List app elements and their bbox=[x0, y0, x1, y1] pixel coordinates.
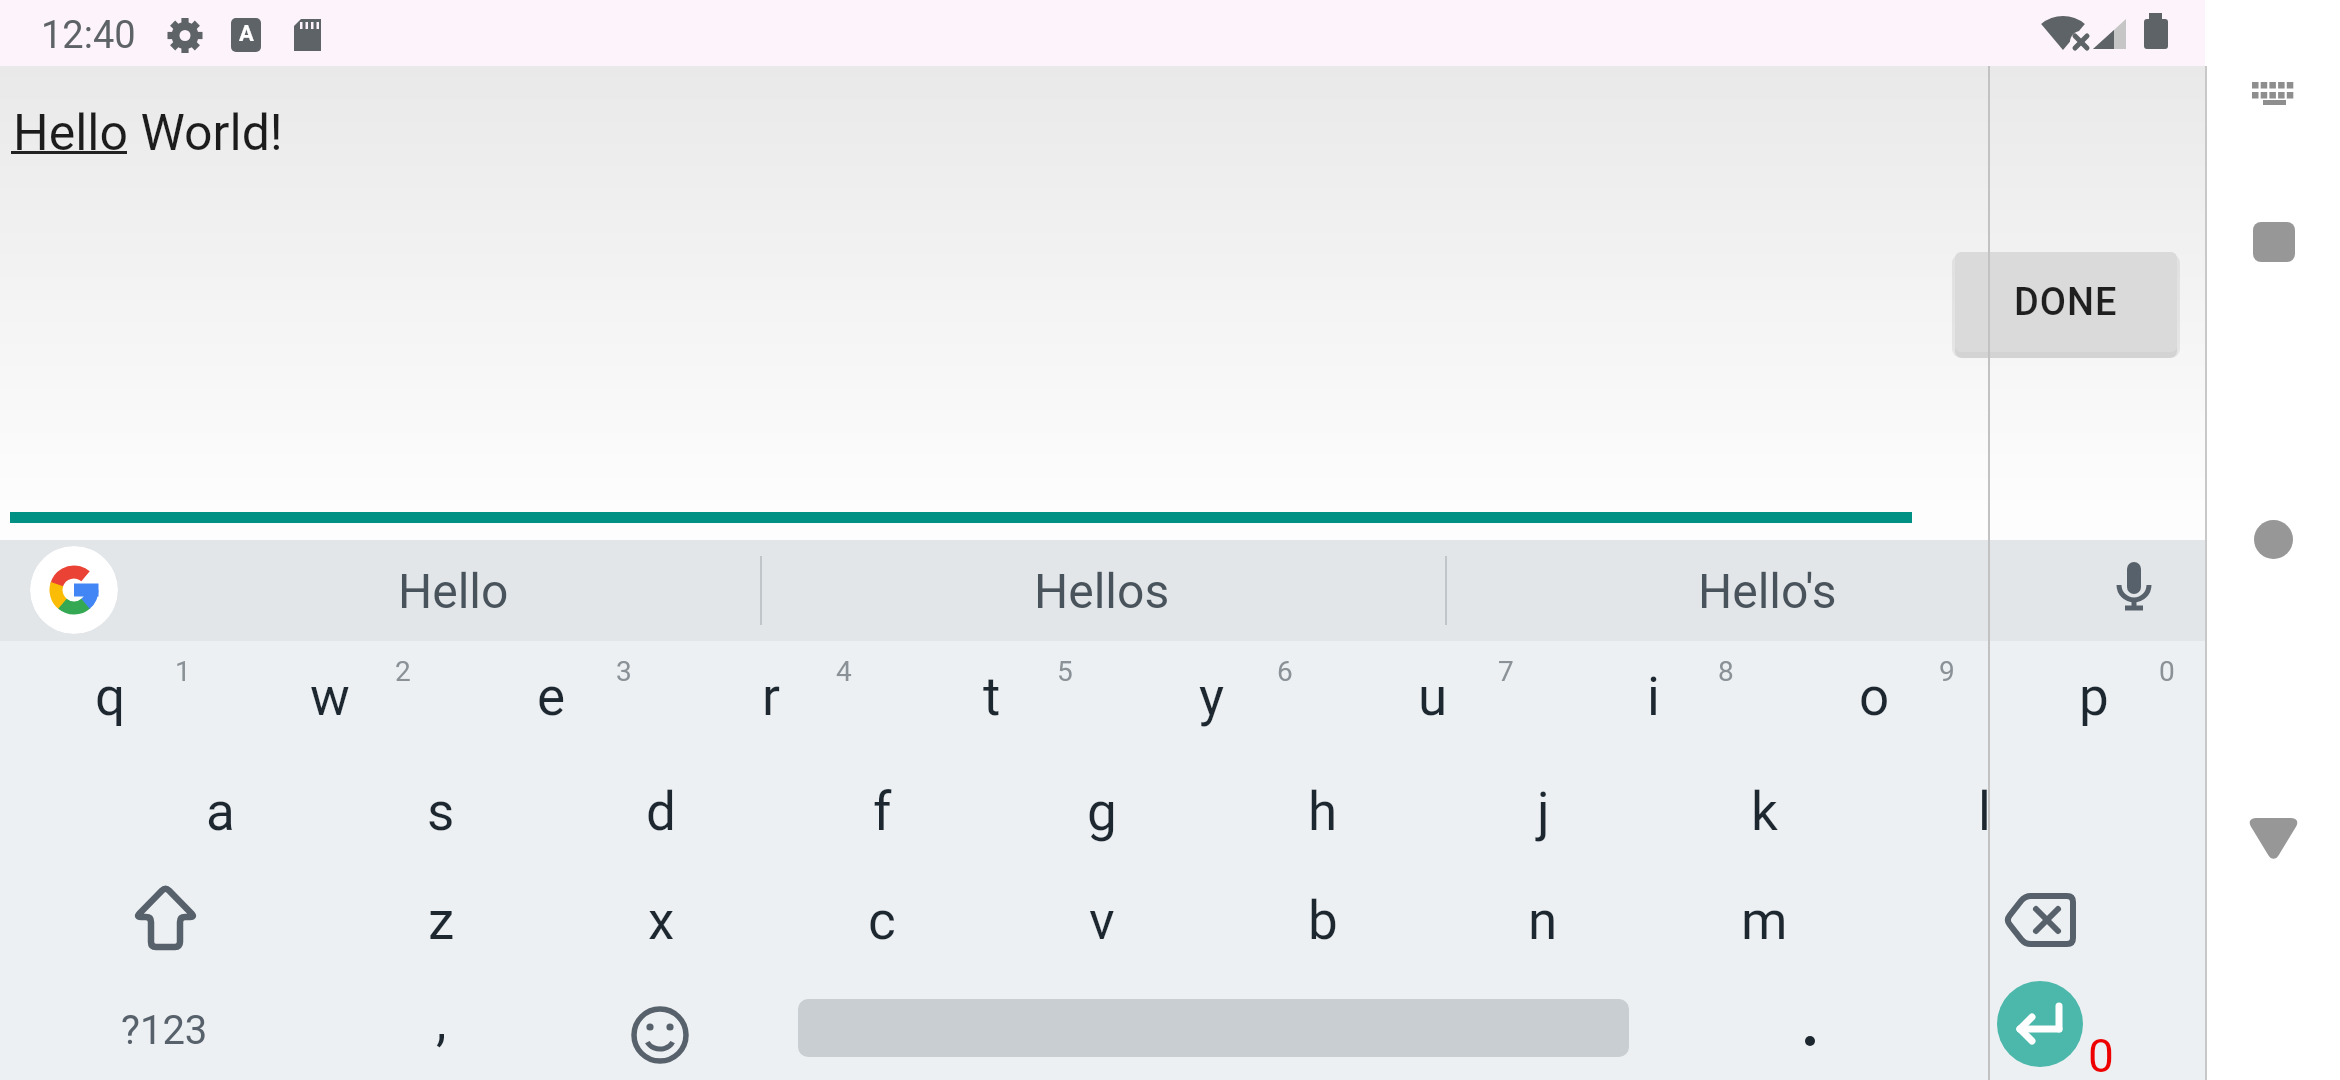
staticText: m bbox=[1741, 890, 1788, 952]
staticText: l bbox=[1978, 781, 1991, 843]
staticText: t bbox=[983, 666, 1001, 728]
button[interactable]: z bbox=[331, 866, 551, 976]
staticText: 0 bbox=[2088, 1029, 2114, 1080]
button[interactable]: s bbox=[331, 757, 551, 867]
button[interactable] bbox=[2099, 550, 2169, 630]
button[interactable]: y bbox=[1102, 642, 1322, 752]
staticText: q bbox=[95, 666, 126, 728]
button[interactable] bbox=[2254, 520, 2293, 559]
button[interactable]: g bbox=[992, 757, 1212, 867]
staticText: ?123 bbox=[121, 1007, 208, 1054]
button[interactable]: v bbox=[992, 866, 1212, 976]
button[interactable]: DONE bbox=[1955, 252, 2177, 352]
staticText: A bbox=[239, 21, 254, 47]
staticText: Hello bbox=[398, 563, 509, 619]
staticText: Hello's bbox=[1698, 563, 1837, 619]
button[interactable]: c bbox=[772, 866, 992, 976]
button[interactable] bbox=[55, 866, 275, 976]
button[interactable]: b bbox=[1213, 866, 1433, 976]
button[interactable] bbox=[30, 546, 118, 634]
staticText: e bbox=[537, 666, 566, 728]
staticText: Hellos bbox=[1034, 563, 1170, 619]
button[interactable]: o bbox=[1764, 642, 1984, 752]
button[interactable] bbox=[1930, 866, 2150, 976]
button[interactable]: r bbox=[661, 642, 881, 752]
button[interactable]: h bbox=[1213, 757, 1433, 867]
button[interactable] bbox=[550, 977, 770, 1080]
staticText: i bbox=[1647, 666, 1660, 728]
button[interactable] bbox=[1700, 980, 1832, 1080]
staticText: 12:40 bbox=[41, 13, 136, 58]
staticText: 1 bbox=[175, 655, 191, 688]
button[interactable]: w bbox=[220, 642, 440, 752]
button[interactable]: e bbox=[441, 642, 661, 752]
button[interactable]: j bbox=[1433, 757, 1653, 867]
staticText: 5 bbox=[1057, 655, 1073, 688]
staticText: 3 bbox=[616, 655, 632, 688]
button[interactable]: f bbox=[772, 757, 992, 867]
staticText: j bbox=[1537, 781, 1550, 843]
staticText: p bbox=[2079, 666, 2109, 728]
staticText: u bbox=[1418, 666, 1448, 728]
button[interactable] bbox=[2253, 222, 2295, 262]
staticText: n bbox=[1528, 890, 1558, 952]
button[interactable]: m bbox=[1654, 866, 1874, 976]
button[interactable]: a bbox=[110, 757, 330, 867]
button[interactable]: k bbox=[1654, 757, 1874, 867]
staticText: w bbox=[310, 666, 350, 728]
staticText: k bbox=[1751, 781, 1778, 843]
button[interactable] bbox=[2245, 814, 2303, 866]
staticText: 7 bbox=[1498, 655, 1514, 688]
button[interactable]: q bbox=[0, 642, 220, 752]
staticText: h bbox=[1308, 781, 1338, 843]
staticText: r bbox=[762, 666, 780, 728]
staticText: DONE bbox=[2014, 280, 2118, 325]
button[interactable]: , bbox=[361, 970, 521, 1074]
button[interactable]: Hello bbox=[138, 540, 768, 641]
staticText: 4 bbox=[836, 655, 852, 688]
staticText: Hello World! bbox=[13, 104, 283, 163]
staticText: c bbox=[868, 890, 896, 952]
staticText: y bbox=[1199, 666, 1225, 728]
staticText: 2 bbox=[395, 655, 411, 688]
button[interactable]: u bbox=[1323, 642, 1543, 752]
button[interactable]: Hello's bbox=[1457, 540, 2077, 641]
staticText: s bbox=[427, 781, 455, 843]
staticText: g bbox=[1087, 781, 1117, 843]
staticText: a bbox=[206, 781, 235, 843]
staticText: d bbox=[646, 781, 676, 843]
button[interactable]: ?123 bbox=[54, 978, 274, 1080]
button[interactable]: l bbox=[1874, 757, 2094, 867]
button[interactable]: p bbox=[1984, 642, 2204, 752]
button[interactable]: x bbox=[551, 866, 771, 976]
staticText: b bbox=[1308, 890, 1338, 952]
staticText: x bbox=[648, 890, 675, 952]
staticText: 6 bbox=[1277, 655, 1293, 688]
staticText: f bbox=[873, 781, 892, 843]
button[interactable] bbox=[1997, 981, 2083, 1067]
button[interactable]: Hellos bbox=[772, 540, 1432, 641]
staticText: v bbox=[1089, 890, 1115, 952]
button[interactable]: i bbox=[1543, 642, 1763, 752]
button[interactable]: n bbox=[1433, 866, 1653, 976]
staticText: o bbox=[1859, 666, 1890, 728]
staticText: 0 bbox=[2159, 655, 2175, 688]
staticText: 8 bbox=[1718, 655, 1734, 688]
button[interactable]: t bbox=[882, 642, 1102, 752]
staticText: , bbox=[436, 991, 447, 1053]
button[interactable] bbox=[2240, 62, 2306, 124]
staticText: z bbox=[428, 890, 455, 952]
button[interactable]: d bbox=[551, 757, 771, 867]
staticText: 9 bbox=[1939, 655, 1955, 688]
